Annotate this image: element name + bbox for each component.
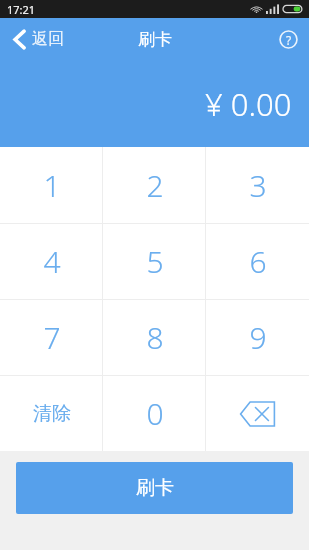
button[interactable]: 9 [206,300,309,375]
staticText: 7 [43,317,61,358]
staticText: 1 [43,165,61,206]
button[interactable]: 3 [206,147,309,223]
button[interactable]: 6 [206,224,309,299]
button[interactable]: 0 [103,376,206,451]
button[interactable]: 1 [0,147,103,223]
staticText: 返回 [32,29,64,49]
staticText: 刷卡 [136,476,174,500]
staticText: 5 [146,241,164,282]
staticText: 17:21 [7,2,36,17]
button[interactable]: 8 [103,300,206,375]
button[interactable]: 清除 [0,376,103,451]
button[interactable]: 5 [103,224,206,299]
staticText: 6 [249,241,267,282]
button[interactable]: 4 [0,224,103,299]
staticText: 清除 [33,402,71,426]
staticText: 刷卡 [138,29,172,50]
staticText: 2 [146,165,164,206]
staticText: 9 [249,317,267,358]
staticText: 4 [43,241,61,282]
button[interactable]: 7 [0,300,103,375]
staticText: 0 [146,393,164,434]
button[interactable]: 刷卡 [16,462,293,514]
button[interactable]: Help [268,18,309,60]
staticText: ¥ 0.00 [205,83,292,125]
button[interactable]: 返回 [0,18,78,60]
button[interactable]: 2 [103,147,206,223]
button[interactable]: Backspace [206,376,309,451]
staticText: 3 [249,165,267,206]
staticText: ? [286,32,292,48]
staticText: 8 [146,317,164,358]
